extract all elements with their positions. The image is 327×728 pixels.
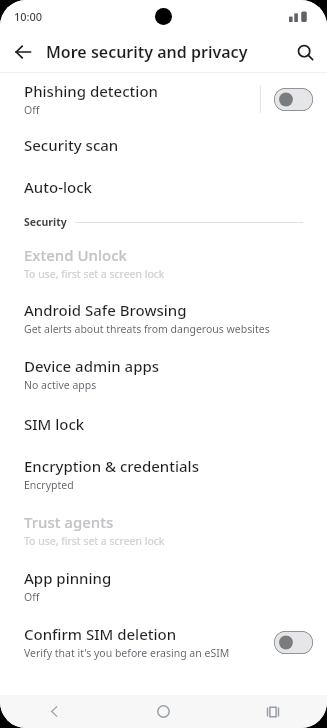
button[interactable]: Back xyxy=(0,32,46,72)
staticText: Off xyxy=(24,590,40,604)
button[interactable]: Phishing detection xyxy=(0,81,327,117)
button[interactable]: Toggle xyxy=(274,88,313,111)
staticText: Verify that it's you before erasing an e… xyxy=(24,646,230,660)
staticText: Encrypted xyxy=(24,478,74,492)
staticText: Android Safe Browsing xyxy=(24,300,187,320)
staticText: More security and privacy xyxy=(46,41,283,63)
staticText: Extend Unlock xyxy=(24,245,127,265)
button[interactable]: Recent apps xyxy=(218,695,327,728)
button[interactable]: Back xyxy=(0,695,109,728)
staticText: Device admin apps xyxy=(24,356,160,376)
button[interactable]: Trust agents xyxy=(0,512,327,548)
staticText: To use, first set a screen lock xyxy=(24,534,165,548)
button[interactable]: Security scan xyxy=(0,135,327,155)
staticText: Auto-lock xyxy=(24,177,92,197)
staticText: Security scan xyxy=(24,135,119,155)
button[interactable]: Search xyxy=(283,32,327,72)
staticText: 10:00 xyxy=(14,9,43,24)
staticText: Phishing detection xyxy=(24,81,158,101)
button[interactable]: App pinning xyxy=(0,568,327,604)
button[interactable]: Confirm SIM deletion xyxy=(0,624,327,660)
staticText: SIM lock xyxy=(24,414,85,434)
button[interactable]: Auto-lock xyxy=(0,177,327,197)
staticText: Get alerts about threats from dangerous … xyxy=(24,322,270,336)
button[interactable]: Android Safe Browsing xyxy=(0,300,327,336)
staticText: To use, first set a screen lock xyxy=(24,267,165,281)
button[interactable]: SIM lock xyxy=(0,414,327,434)
staticText: Encryption & credentials xyxy=(24,456,199,476)
staticText: Confirm SIM deletion xyxy=(24,624,177,644)
button[interactable]: Home xyxy=(109,695,218,728)
staticText: Off xyxy=(24,103,40,117)
staticText: Security xyxy=(24,215,67,229)
button[interactable]: Device admin apps xyxy=(0,356,327,392)
button[interactable]: Extend Unlock xyxy=(0,245,327,281)
button[interactable]: Encryption & credentials xyxy=(0,456,327,492)
staticText: App pinning xyxy=(24,568,112,588)
button[interactable]: Toggle xyxy=(274,631,313,654)
staticText: Trust agents xyxy=(24,512,114,532)
staticText: No active apps xyxy=(24,378,97,392)
